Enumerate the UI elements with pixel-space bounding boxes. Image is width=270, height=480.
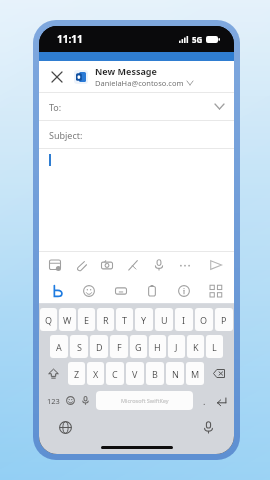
button[interactable]: GIF — [112, 282, 130, 300]
button[interactable]: A — [50, 335, 68, 358]
button[interactable]: Attach — [72, 256, 90, 274]
button[interactable]: V — [126, 362, 144, 385]
button[interactable]: Subject: — [39, 121, 234, 148]
staticText: J — [175, 341, 178, 353]
staticText: D — [96, 341, 103, 353]
staticText: Q — [45, 314, 53, 326]
staticText: E — [84, 314, 90, 326]
button[interactable]: Info — [175, 282, 193, 300]
button[interactable]: S — [70, 335, 88, 358]
staticText: V — [132, 368, 138, 380]
button[interactable]: E — [78, 308, 95, 331]
button[interactable]: Format — [124, 256, 142, 274]
staticText: X — [93, 368, 99, 380]
button[interactable]: Copilot — [48, 282, 66, 300]
button[interactable]: J — [168, 335, 185, 358]
staticText: Subject: — [49, 129, 83, 141]
button[interactable]: More — [176, 256, 194, 274]
staticText: A — [56, 341, 62, 353]
staticText: P — [221, 314, 227, 326]
button[interactable]: Voice typing — [198, 417, 218, 437]
staticText: W — [63, 314, 72, 326]
button[interactable]: Enter — [213, 393, 229, 409]
button[interactable]: Voice input — [78, 393, 93, 408]
staticText: O — [200, 314, 208, 326]
staticText: New Message — [95, 65, 157, 77]
button[interactable]: Camera — [98, 256, 116, 274]
staticText: F — [117, 341, 122, 353]
button[interactable]: L — [206, 335, 223, 358]
staticText: Microsoft SwiftKey — [121, 397, 169, 404]
staticText: B — [152, 368, 158, 380]
staticText: K — [193, 341, 199, 353]
button[interactable]: D — [90, 335, 108, 358]
staticText: T — [122, 314, 128, 326]
staticText: G — [135, 341, 142, 353]
staticText: Y — [141, 314, 147, 326]
button[interactable]: Shift — [41, 362, 66, 385]
button[interactable]: Change language — [55, 417, 75, 437]
button[interactable]: Microsoft SwiftKey — [96, 391, 193, 410]
button[interactable]: U — [155, 308, 173, 331]
staticText: L — [212, 341, 217, 353]
button[interactable]: Dictate — [150, 256, 168, 274]
button[interactable]: Backspace — [206, 362, 232, 385]
button[interactable]: K — [187, 335, 204, 358]
button[interactable]: Emoji — [80, 282, 98, 300]
button[interactable]: To: — [39, 93, 234, 120]
button[interactable]: F — [110, 335, 128, 358]
staticText: S — [77, 341, 82, 353]
staticText: DanielaHa@contoso.com — [95, 78, 184, 88]
staticText: To: — [49, 101, 62, 113]
staticText: I — [182, 314, 186, 326]
button[interactable]: Emoji — [63, 393, 78, 408]
button[interactable]: M — [186, 362, 204, 385]
button[interactable]: 123 — [44, 391, 63, 410]
staticText: H — [154, 341, 161, 353]
staticText: C — [112, 368, 118, 380]
button[interactable]: W — [59, 308, 76, 331]
button[interactable]: N — [166, 362, 184, 385]
button[interactable]: H — [149, 335, 166, 358]
button[interactable]: Send — [207, 256, 225, 274]
button[interactable]: R — [97, 308, 114, 331]
button[interactable]: O — [195, 308, 213, 331]
staticText: U — [161, 314, 168, 326]
button[interactable]: P — [215, 308, 233, 331]
button[interactable]: Z — [68, 362, 85, 385]
staticText: 11:11 — [57, 32, 83, 46]
button[interactable]: G — [130, 335, 147, 358]
button[interactable]: Apps — [207, 282, 225, 300]
staticText: Z — [74, 368, 80, 380]
button[interactable]: B — [146, 362, 164, 385]
button[interactable]: Close — [48, 68, 66, 86]
button[interactable]: Q — [40, 308, 57, 331]
staticText: . — [203, 395, 206, 407]
staticText: R — [103, 314, 109, 326]
staticText: 123 — [47, 396, 60, 406]
button[interactable]: Y — [135, 308, 153, 331]
button[interactable]: Clipboard — [143, 282, 161, 300]
staticText: M — [191, 368, 200, 380]
button[interactable]: X — [87, 362, 104, 385]
button[interactable]: . — [198, 394, 211, 407]
staticText: 5G — [192, 34, 203, 45]
button[interactable]: I — [175, 308, 193, 331]
button[interactable]: Insert — [46, 256, 64, 274]
staticText: N — [172, 368, 179, 380]
button[interactable]: C — [106, 362, 124, 385]
button[interactable]: T — [116, 308, 133, 331]
